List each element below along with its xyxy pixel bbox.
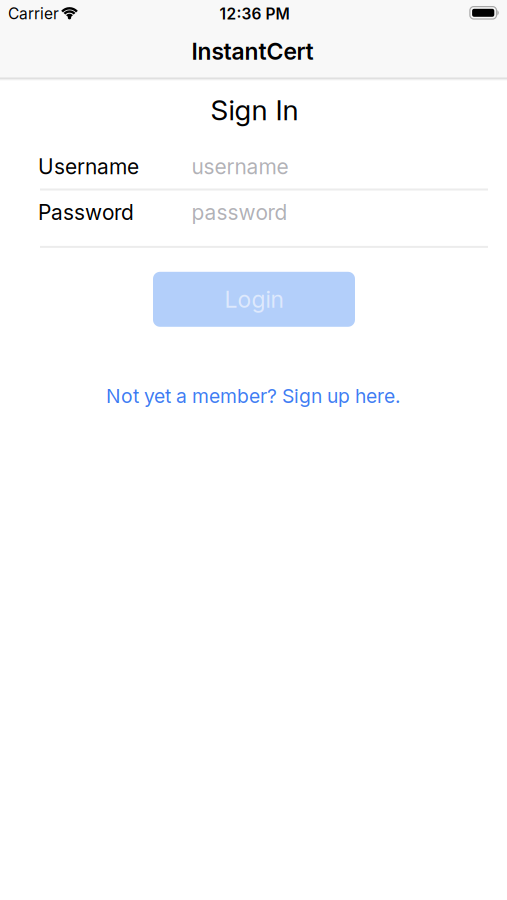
staticText: Not yet a member? Sign up here.	[106, 384, 401, 408]
button[interactable]: Not yet a member? Sign up here.	[106, 384, 401, 408]
staticText: Sign In	[210, 93, 298, 127]
button[interactable]: Username text field	[191, 154, 505, 179]
staticText: 12:36 PM	[219, 4, 289, 23]
staticText: Username	[38, 154, 139, 179]
staticText: username	[191, 154, 288, 179]
staticText: Password	[38, 200, 134, 225]
button[interactable]: Password text field	[191, 200, 505, 225]
staticText: Carrier	[8, 4, 59, 23]
staticText: InstantCert	[191, 38, 313, 65]
staticText: password	[191, 200, 287, 225]
button[interactable]: Login	[153, 272, 355, 327]
staticText: Login	[224, 285, 283, 313]
